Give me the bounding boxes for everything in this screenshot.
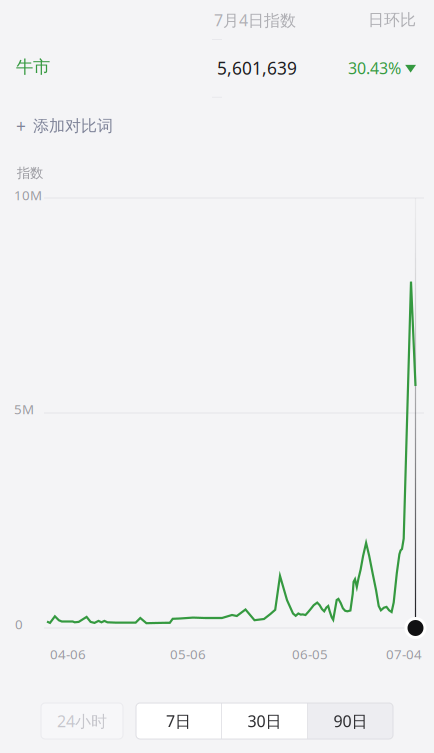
staticText: 指数 (17, 165, 43, 181)
button[interactable]: 24小时 (41, 703, 123, 739)
staticText: 24小时 (57, 710, 107, 732)
staticText: + (16, 114, 26, 137)
button[interactable]: + (16, 106, 136, 146)
button[interactable]: 90日 (308, 703, 393, 739)
button[interactable]: 牛市 (16, 44, 86, 90)
button[interactable]: 30日 (222, 703, 307, 739)
staticText: 7日 (166, 710, 191, 732)
staticText: 10M (14, 186, 42, 204)
staticText: 添加对比词 (33, 116, 113, 136)
staticText: 30.43% (348, 57, 401, 79)
staticText: 牛市 (16, 56, 50, 78)
staticText: 5,601,639 (217, 56, 297, 79)
staticText: 06-05 (292, 645, 328, 663)
staticText: 0 (15, 615, 23, 633)
staticText: 05-06 (170, 645, 206, 663)
staticText: 07-04 (386, 645, 422, 663)
staticText: 5M (14, 400, 34, 418)
staticText: 90日 (333, 710, 367, 732)
staticText: 7月4日指数 (214, 9, 296, 31)
staticText: 日环比 (368, 10, 416, 30)
staticText: 30日 (247, 710, 281, 732)
staticText: 04-06 (50, 645, 86, 663)
button[interactable]: 7日 (136, 703, 221, 739)
